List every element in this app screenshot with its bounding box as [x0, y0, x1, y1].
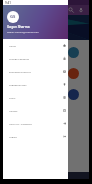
button[interactable]: [68, 89, 89, 110]
staticText: GS: [10, 14, 16, 20]
staticText: 9:41: [5, 1, 11, 5]
staticText: Change Password: [9, 57, 30, 60]
staticText: Home: [9, 44, 16, 47]
staticText: Touch ID / Password: [9, 122, 32, 125]
button[interactable]: Suggestion Box: [3, 78, 68, 91]
button[interactable]: Logout: [3, 130, 68, 143]
button[interactable]: Touch ID / Password: [3, 117, 68, 130]
staticText: Holiday: [9, 109, 18, 112]
staticText: Gagan Sharma: [7, 25, 30, 29]
button[interactable]: Change Password: [3, 52, 68, 65]
button[interactable]: Voice search: [76, 5, 86, 15]
staticText: Suggestion Box: [9, 83, 27, 86]
staticText: Policy: [9, 96, 16, 99]
staticText: gagan.sharma@krishev.com: [7, 30, 39, 33]
button[interactable]: [68, 47, 89, 68]
button[interactable]: Search: [66, 5, 76, 15]
button[interactable]: Employee Directory: [3, 65, 68, 78]
button[interactable]: [68, 68, 89, 89]
button[interactable]: Home: [3, 39, 68, 52]
staticText: Logout: [9, 135, 17, 138]
button[interactable]: Holiday: [3, 104, 68, 117]
staticText: Employee Directory: [9, 70, 31, 73]
button[interactable]: Policy: [3, 91, 68, 104]
